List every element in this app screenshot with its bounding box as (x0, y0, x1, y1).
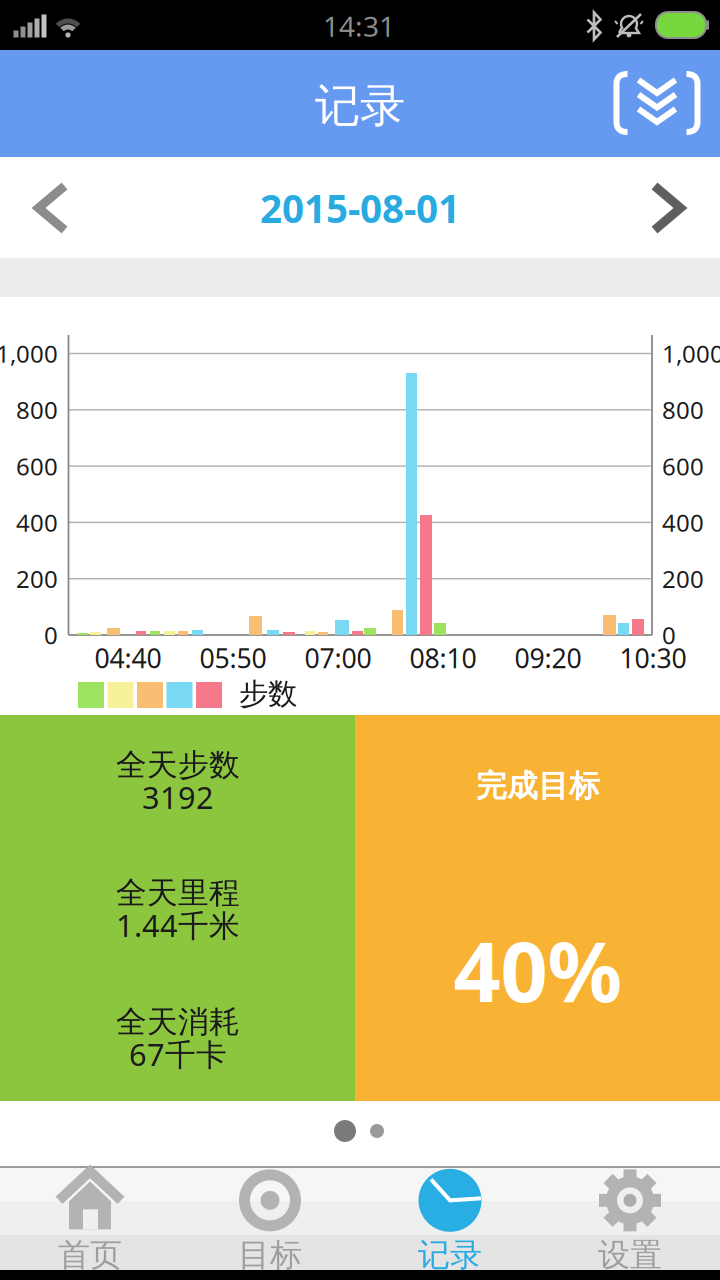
staticText: 04:40 (94, 640, 161, 676)
staticText: 1,000 (0, 338, 58, 369)
staticText: 1.44千米 (116, 905, 240, 945)
staticText: 记录 (418, 1235, 482, 1275)
staticText: 05:50 (199, 640, 266, 676)
button[interactable]: 前一天 (26, 174, 77, 242)
button[interactable]: 目标 (180, 1166, 360, 1270)
staticText: 600 (662, 450, 704, 482)
staticText: 40% (453, 915, 622, 1025)
staticText: 14:31 (323, 7, 395, 45)
staticText: 400 (16, 506, 58, 538)
staticText: 1,000 (662, 338, 720, 369)
staticText: 800 (16, 394, 58, 426)
staticText: 0 (662, 619, 676, 651)
button[interactable]: 后一天 (642, 174, 693, 242)
staticText: 设置 (598, 1235, 662, 1275)
staticText: 600 (16, 450, 58, 482)
staticText: 2015-08-01 (260, 182, 460, 234)
staticText: 首页 (58, 1235, 122, 1275)
button[interactable]: 首页 (0, 1166, 180, 1270)
staticText: 200 (16, 563, 58, 595)
staticText: 完成目标 (476, 767, 600, 805)
staticText: 记录 (315, 78, 405, 134)
button[interactable]: 设置 (540, 1166, 720, 1270)
button[interactable]: 导出 (601, 59, 712, 147)
staticText: 800 (662, 394, 704, 426)
staticText: 全天里程 (116, 874, 240, 912)
staticText: 0 (44, 619, 58, 651)
staticText: 步数 (239, 676, 297, 712)
staticText: 09:20 (514, 640, 581, 676)
staticText: 全天步数 (116, 746, 240, 784)
staticText: 200 (662, 563, 704, 595)
button[interactable]: 记录 (360, 1166, 540, 1270)
staticText: 08:10 (409, 640, 476, 676)
staticText: 67千卡 (129, 1034, 227, 1074)
staticText: 07:00 (304, 640, 371, 676)
staticText: 400 (662, 506, 704, 538)
staticText: 10:30 (619, 640, 686, 676)
staticText: 3192 (142, 777, 214, 817)
staticText: 目标 (238, 1235, 302, 1275)
staticText: 全天消耗 (116, 1003, 240, 1041)
